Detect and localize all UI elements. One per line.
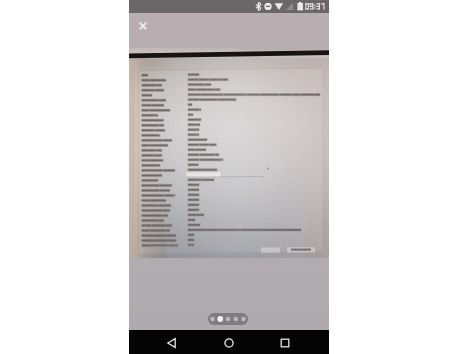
button[interactable]: Close (135, 18, 151, 34)
button[interactable]: Back (156, 330, 188, 354)
button[interactable]: Home (213, 330, 245, 354)
button[interactable]: Page 2 of 5 (208, 313, 248, 325)
button[interactable]: Recent apps (269, 330, 301, 354)
